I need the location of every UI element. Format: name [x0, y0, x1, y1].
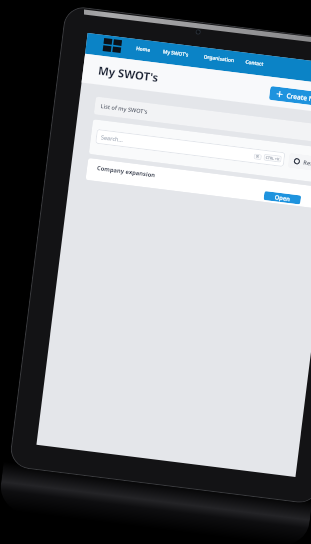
staticText: List of my SWOT's — [100, 102, 148, 116]
button[interactable]: Create New — [269, 86, 311, 107]
staticText: Company expansion — [97, 164, 156, 179]
staticText: Organisation — [203, 53, 235, 64]
staticText: Contact — [245, 59, 265, 68]
staticText: My SWOT's — [162, 48, 189, 59]
staticText: CTRL +K — [265, 155, 280, 162]
button[interactable]: Company expansion — [85, 158, 311, 209]
staticText: Refresh — [303, 159, 311, 169]
button[interactable]: My SWOT's — [159, 45, 193, 62]
button[interactable]: Open — [263, 191, 301, 204]
staticText: Home — [136, 45, 151, 54]
staticText: Create New — [286, 91, 311, 104]
button[interactable]: Home — [132, 42, 155, 57]
button[interactable]: App logo — [103, 38, 122, 53]
button[interactable]: List of my SWOT's — [94, 96, 311, 143]
button[interactable]: Search... — [95, 129, 285, 167]
staticText: Search... — [100, 133, 124, 144]
button[interactable]: Contact — [241, 55, 268, 71]
staticText: ⌘ — [255, 155, 260, 159]
button[interactable]: Organisation — [200, 50, 238, 68]
button[interactable]: Refresh — [288, 153, 311, 172]
staticText: My SWOT's — [97, 62, 160, 85]
staticText: Open — [274, 193, 291, 203]
